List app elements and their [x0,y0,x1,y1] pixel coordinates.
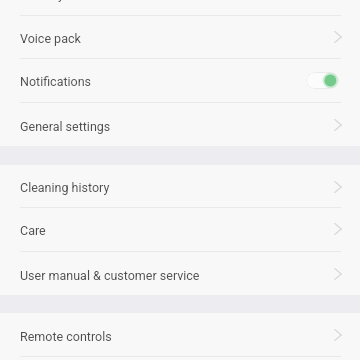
staticText: Find my robot [20,0,97,2]
button[interactable]: Notifications [0,59,360,101]
staticText: General settings [20,118,111,133]
button[interactable]: Voice pack [0,16,360,58]
button[interactable]: Find my robot [0,0,360,15]
button[interactable]: Care [0,208,360,250]
staticText: Care [20,222,46,237]
button[interactable]: User manual & customer service [0,252,360,296]
button[interactable]: Notifications switch, on [306,72,339,89]
staticText: Remote controls [20,328,112,343]
button[interactable]: General settings [0,103,360,147]
button[interactable]: Cleaning history [0,165,360,208]
staticText: Voice pack [20,30,81,45]
staticText: Notifications [20,73,92,88]
staticText: Cleaning history [20,179,110,194]
staticText: User manual & customer service [20,267,200,282]
button[interactable]: Remote controls [0,313,360,357]
